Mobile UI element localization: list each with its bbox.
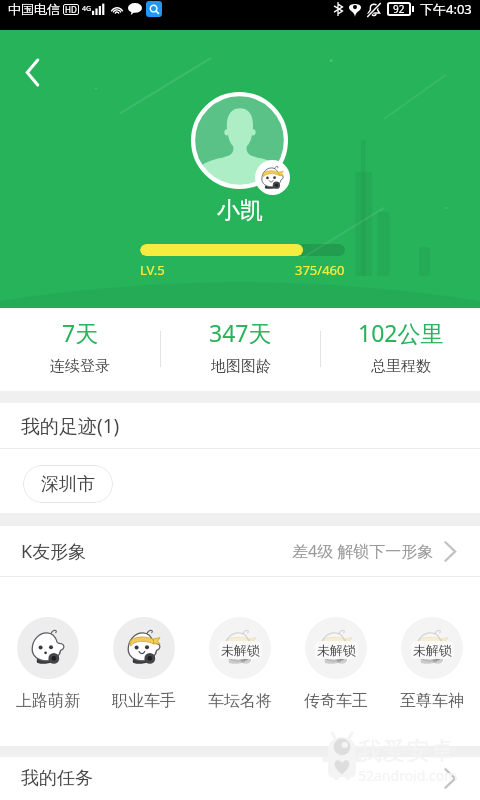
button[interactable]: 347天 [161,308,320,376]
staticText: 总里程数 [371,357,431,376]
button[interactable]: 未解锁 [288,577,384,711]
button[interactable]: 深圳市 [23,465,113,503]
staticText: 下午4:03 [420,0,472,18]
staticText: 未解锁 [221,642,260,658]
staticText: 92 [393,2,405,16]
staticText: 传奇车王 [304,691,368,711]
button[interactable]: 职业车手 [96,577,192,711]
staticText: 我的足迹(1) [21,413,120,439]
staticText: LV.5 [140,261,165,279]
staticText: 375/460 [295,261,345,279]
button[interactable]: 上路萌新 [0,577,96,711]
button[interactable]: 我的任务 [0,757,480,800]
staticText: 102公里 [358,317,444,348]
button[interactable]: 7天 [0,308,160,376]
button[interactable]: Back [10,50,54,94]
staticText: 车坛名将 [208,691,272,711]
staticText: 中国电信 [8,1,60,17]
staticText: 未解锁 [317,642,356,658]
staticText: 至尊车神 [400,691,464,711]
staticText: 我的任务 [21,767,93,790]
staticText: 连续登录 [50,357,110,376]
staticText: 职业车手 [112,691,176,711]
staticText: 未解锁 [413,642,452,658]
staticText: HD [65,4,77,15]
button[interactable]: K友形象 [0,526,480,576]
staticText: 7天 [62,317,99,348]
staticText: 地图图龄 [211,357,271,376]
button[interactable]: 未解锁 [384,577,480,711]
staticText: 上路萌新 [16,691,80,711]
staticText: 我爱安卓 [358,736,454,766]
staticText: 4G [82,4,92,14]
button[interactable]: 未解锁 [192,577,288,711]
staticText: 差4级 解锁下一形象 [292,540,434,562]
button[interactable]: 102公里 [321,308,480,376]
staticText: 小凯 [217,196,263,225]
staticText: K友形象 [21,539,87,564]
staticText: 347天 [209,317,272,348]
staticText: 深圳市 [41,473,95,496]
staticText: 52android.com [358,766,458,785]
